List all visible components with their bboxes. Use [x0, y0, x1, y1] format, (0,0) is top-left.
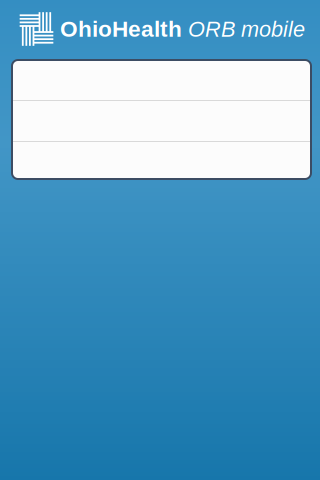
button[interactable]: [12, 142, 311, 179]
button[interactable]: [12, 60, 311, 100]
staticText: OhioHealth ORB mobile: [60, 17, 305, 41]
button[interactable]: [12, 101, 311, 141]
